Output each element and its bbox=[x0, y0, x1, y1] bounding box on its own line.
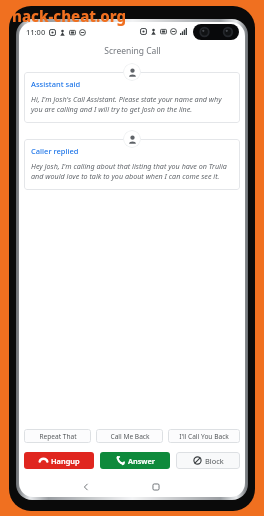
button[interactable]: I'll Call You Back bbox=[168, 429, 240, 443]
staticText: Screening Call bbox=[104, 45, 161, 57]
button[interactable]: Caller replied bbox=[24, 139, 240, 190]
staticText: 11:00 bbox=[26, 27, 46, 37]
staticText: Call Me Back bbox=[110, 432, 150, 441]
other: Speaker avatar bbox=[123, 63, 141, 81]
button[interactable]: Assistant said bbox=[24, 72, 240, 123]
staticText: Assistant said bbox=[31, 79, 81, 89]
staticText: Answer bbox=[128, 456, 155, 466]
staticText: Hey Josh, I'm calling about that listing… bbox=[31, 161, 233, 181]
button[interactable]: Repeat That bbox=[24, 429, 91, 443]
button[interactable]: Home bbox=[148, 479, 164, 495]
button[interactable]: Back bbox=[78, 479, 94, 495]
staticText: Hi, I'm Josh's Call Assistant. Please st… bbox=[31, 94, 233, 114]
staticText: Block bbox=[205, 456, 224, 466]
staticText: Hangup bbox=[51, 456, 80, 466]
button[interactable]: Call Me Back bbox=[96, 429, 163, 443]
button[interactable]: Answer bbox=[100, 452, 170, 469]
button[interactable]: Block bbox=[176, 452, 240, 469]
staticText: I'll Call You Back bbox=[179, 432, 229, 441]
staticText: Repeat That bbox=[39, 432, 77, 441]
other: Speaker avatar bbox=[123, 130, 141, 148]
staticText: Caller replied bbox=[31, 146, 79, 156]
staticText: hack-cheat.org bbox=[12, 6, 127, 26]
button[interactable]: Hangup bbox=[24, 452, 94, 469]
